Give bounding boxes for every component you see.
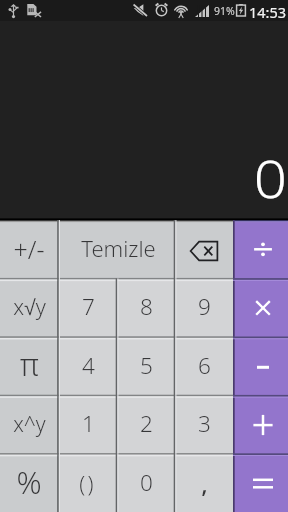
staticText: 9 bbox=[198, 291, 211, 322]
button[interactable]: equals bbox=[233, 454, 288, 512]
button[interactable]: plus bbox=[233, 395, 288, 453]
button[interactable]: 2 bbox=[116, 395, 174, 453]
staticText: 0 bbox=[254, 143, 288, 212]
staticText: 7 bbox=[82, 291, 95, 322]
staticText: 0 bbox=[140, 467, 153, 498]
button[interactable]: 3 bbox=[174, 395, 233, 453]
staticText: 4 bbox=[82, 350, 95, 381]
button[interactable]: 6 bbox=[174, 337, 233, 395]
staticText: , bbox=[201, 467, 208, 500]
staticText: 91% bbox=[214, 4, 235, 18]
staticText: π bbox=[20, 343, 39, 385]
button[interactable]: multiply bbox=[233, 278, 288, 336]
staticText: 5 bbox=[140, 350, 153, 381]
button[interactable]: () bbox=[58, 454, 117, 512]
staticText: 3 bbox=[198, 408, 211, 439]
staticText: 14:53 bbox=[249, 2, 287, 22]
button[interactable]: π bbox=[0, 337, 58, 395]
staticText: x^y bbox=[13, 410, 46, 439]
button[interactable]: backspace bbox=[174, 220, 233, 278]
button[interactable]: divide bbox=[233, 220, 288, 278]
staticText: x√y bbox=[13, 292, 46, 321]
staticText: Temizle bbox=[81, 233, 156, 263]
button[interactable]: minus bbox=[233, 337, 288, 395]
button[interactable]: 5 bbox=[116, 337, 174, 395]
button[interactable]: 9 bbox=[174, 278, 233, 336]
staticText: () bbox=[79, 469, 96, 498]
staticText: 2 bbox=[140, 408, 153, 439]
button[interactable]: 1 bbox=[58, 395, 117, 453]
staticText: 1 bbox=[82, 408, 95, 439]
staticText: 6 bbox=[198, 350, 211, 381]
button[interactable]: 0 bbox=[116, 454, 174, 512]
staticText: 8 bbox=[140, 291, 153, 322]
staticText: % bbox=[16, 461, 42, 503]
button[interactable]: x√y bbox=[0, 278, 58, 336]
button[interactable]: +/- bbox=[0, 220, 58, 278]
button[interactable]: 8 bbox=[116, 278, 174, 336]
staticText: +/- bbox=[13, 232, 45, 266]
button[interactable]: % bbox=[0, 454, 58, 512]
button[interactable]: Temizle bbox=[58, 220, 175, 278]
button[interactable]: x^y bbox=[0, 395, 58, 453]
button[interactable]: 4 bbox=[58, 337, 117, 395]
button[interactable]: 7 bbox=[58, 278, 117, 336]
button[interactable]: , bbox=[174, 454, 233, 512]
